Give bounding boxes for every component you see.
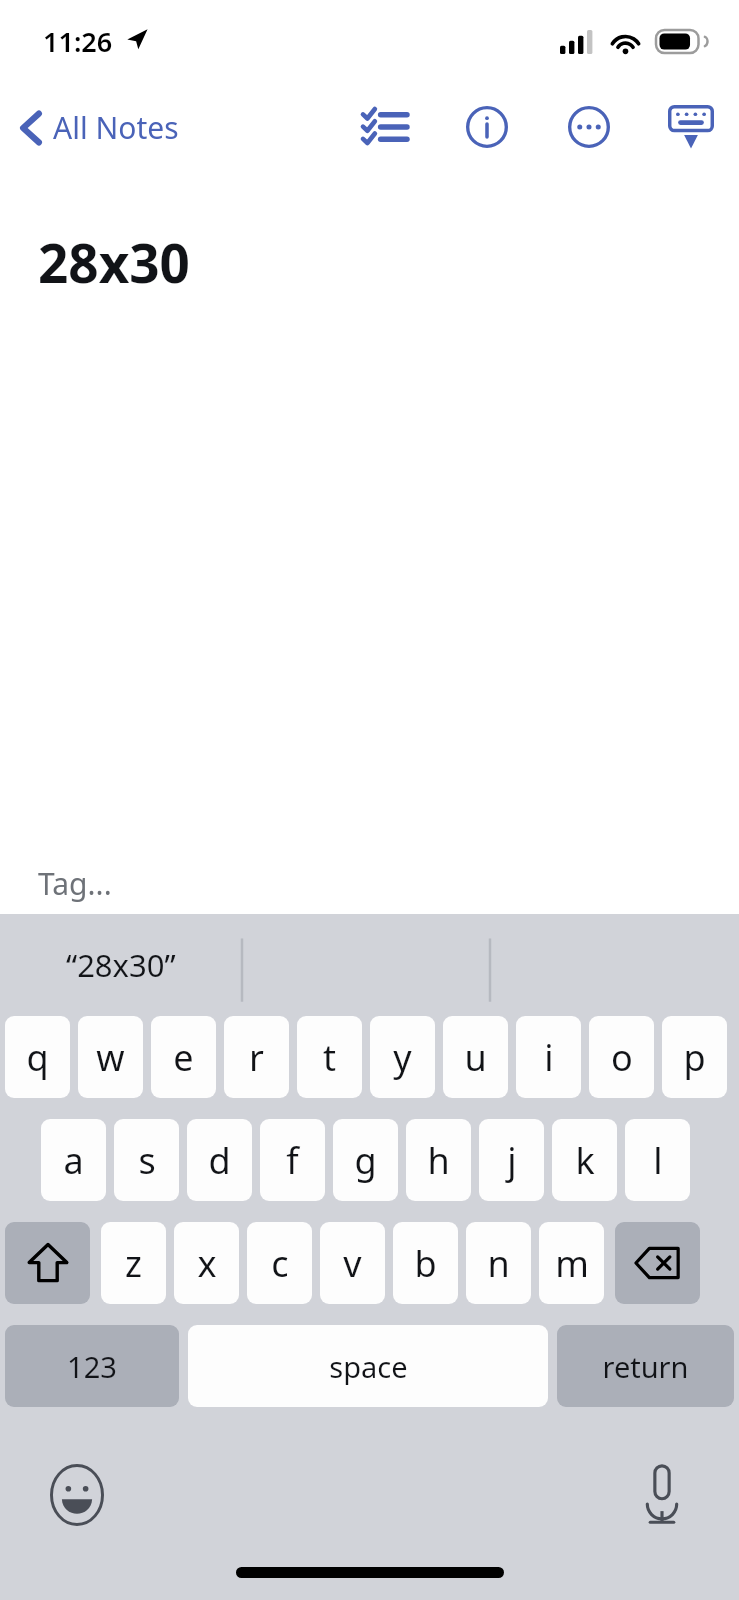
button[interactable]: s [114, 1119, 179, 1201]
staticText: v [343, 1239, 362, 1288]
staticText: r [249, 1033, 264, 1082]
button[interactable]: “28x30” [0, 914, 242, 1016]
staticText: p [683, 1033, 706, 1082]
button[interactable]: Checklist [359, 101, 411, 153]
staticText: j [507, 1136, 517, 1185]
button[interactable]: t [297, 1016, 362, 1098]
staticText: u [464, 1033, 487, 1082]
staticText: b [414, 1239, 437, 1288]
staticText: t [323, 1033, 336, 1082]
staticText: f [286, 1136, 299, 1185]
staticText: w [96, 1033, 125, 1082]
button[interactable]: h [406, 1119, 471, 1201]
button[interactable]: d [187, 1119, 252, 1201]
staticText: All Notes [53, 107, 179, 148]
staticText: h [427, 1136, 450, 1185]
staticText: e [173, 1033, 194, 1082]
staticText: s [138, 1136, 156, 1185]
button[interactable]: p [662, 1016, 727, 1098]
staticText: o [611, 1033, 633, 1082]
button[interactable]: k [552, 1119, 617, 1201]
staticText: l [653, 1136, 663, 1185]
staticText: n [487, 1239, 510, 1288]
button[interactable]: r [224, 1016, 289, 1098]
button[interactable]: Dictation [631, 1464, 693, 1526]
staticText: a [63, 1136, 84, 1185]
staticText: g [354, 1136, 377, 1185]
button[interactable]: n [466, 1222, 531, 1304]
button[interactable]: Backspace [615, 1222, 700, 1304]
button[interactable]: j [479, 1119, 544, 1201]
button[interactable]: i [516, 1016, 581, 1098]
staticText: x [197, 1239, 217, 1288]
button[interactable]: o [589, 1016, 654, 1098]
staticText: Tag... [38, 863, 112, 904]
button[interactable]: u [443, 1016, 508, 1098]
button[interactable]: w [78, 1016, 143, 1098]
button[interactable]: All Notes [12, 101, 187, 154]
button[interactable]: 123 [5, 1325, 179, 1407]
button[interactable]: q [5, 1016, 70, 1098]
staticText: return [602, 1347, 689, 1386]
staticText: 11:26 [43, 23, 113, 60]
button[interactable]: b [393, 1222, 458, 1304]
staticText: 28x30 [38, 226, 190, 298]
button[interactable]: a [41, 1119, 106, 1201]
staticText: m [555, 1239, 589, 1288]
button[interactable]: m [539, 1222, 604, 1304]
button[interactable]: return [557, 1325, 734, 1407]
button[interactable]: Hide keyboard [665, 101, 717, 153]
button[interactable]: l [625, 1119, 690, 1201]
staticText: z [125, 1239, 142, 1288]
button[interactable]: c [247, 1222, 312, 1304]
staticText: d [208, 1136, 231, 1185]
button[interactable]: Info [461, 101, 513, 153]
staticText: i [544, 1033, 554, 1082]
button[interactable]: v [320, 1222, 385, 1304]
button[interactable]: Shift [5, 1222, 90, 1304]
button[interactable]: f [260, 1119, 325, 1201]
staticText: y [393, 1033, 412, 1082]
button[interactable]: y [370, 1016, 435, 1098]
button[interactable]: Emoji [46, 1464, 108, 1526]
button[interactable]: e [151, 1016, 216, 1098]
staticText: c [271, 1239, 289, 1288]
button[interactable]: More options [563, 101, 615, 153]
button[interactable]: x [174, 1222, 239, 1304]
button[interactable]: space [188, 1325, 548, 1407]
staticText: “28x30” [66, 944, 176, 986]
staticText: 123 [67, 1347, 117, 1386]
staticText: q [26, 1033, 49, 1082]
button[interactable]: z [101, 1222, 166, 1304]
staticText: space [329, 1347, 408, 1386]
staticText: k [575, 1136, 595, 1185]
button[interactable]: g [333, 1119, 398, 1201]
